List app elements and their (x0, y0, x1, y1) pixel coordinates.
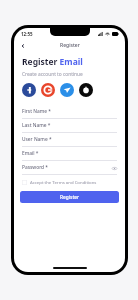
staticText: Last Name * (22, 122, 117, 129)
staticText: Create account to continue (22, 71, 83, 78)
staticText: Register Email (22, 56, 83, 68)
button[interactable]: Sign in with Apple (79, 83, 93, 97)
staticText: Password * (22, 164, 111, 171)
staticText: First Name * (22, 108, 117, 115)
button[interactable]: Sign in with Google (41, 83, 55, 97)
button[interactable]: Accept the Terms and Conditions (22, 179, 117, 185)
staticText: Register (60, 42, 80, 49)
button[interactable]: First Name * (22, 105, 117, 119)
other: Show password (111, 165, 117, 171)
button[interactable]: Password * (22, 161, 117, 175)
button[interactable]: Register (20, 191, 119, 203)
button[interactable]: User Name * (22, 133, 117, 147)
button[interactable]: Last Name * (22, 119, 117, 133)
button[interactable]: Sign in with Twitter (60, 83, 74, 97)
staticText: Register (60, 194, 80, 201)
staticText: Accept the Terms and Conditions (30, 179, 97, 185)
staticText: Email * (22, 150, 117, 157)
button[interactable]: Email * (22, 147, 117, 161)
button[interactable]: Sign in with Facebook (22, 83, 36, 97)
staticText: User Name * (22, 136, 117, 143)
button[interactable]: Back (18, 41, 28, 51)
staticText: 12:55 (21, 31, 33, 37)
